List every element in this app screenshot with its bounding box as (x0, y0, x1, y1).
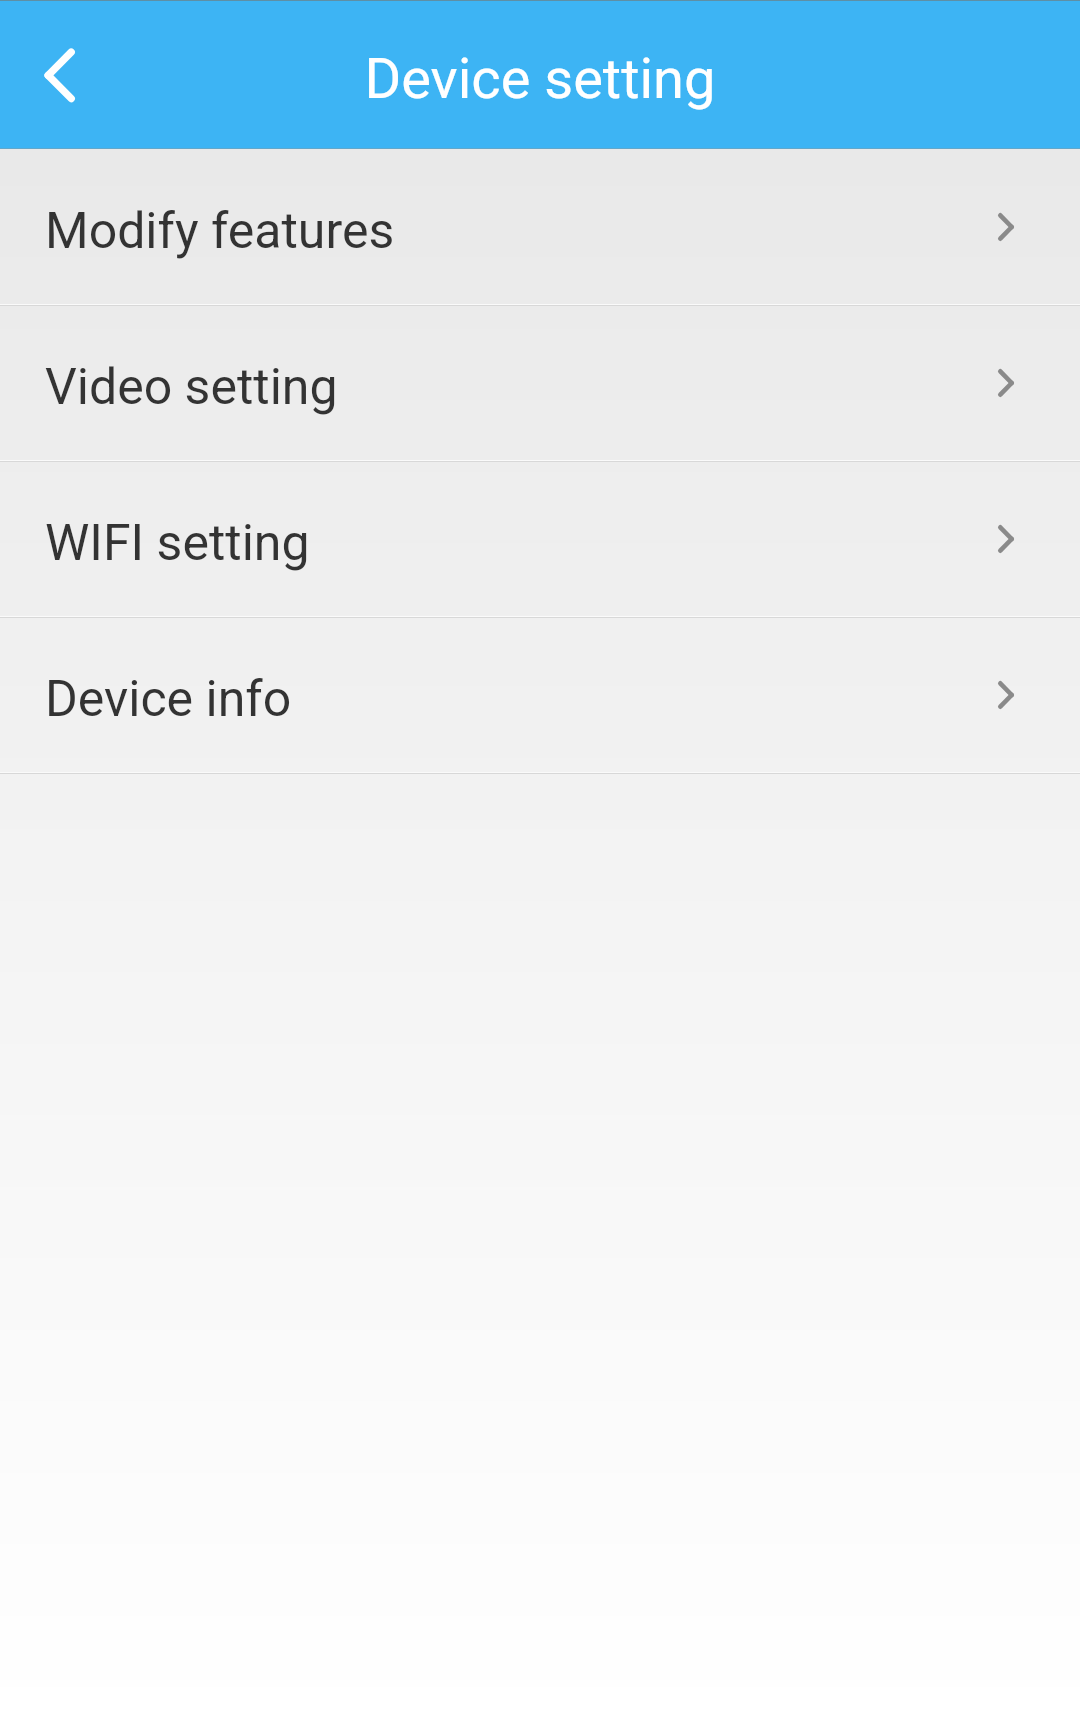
button[interactable]: Device info (0, 618, 1080, 772)
button[interactable]: Video setting (0, 306, 1080, 460)
staticText: Device info (45, 670, 292, 729)
staticText: Modify features (45, 202, 395, 261)
staticText: WIFI setting (45, 514, 310, 573)
button[interactable]: Modify features (0, 150, 1080, 304)
button[interactable]: WIFI setting (0, 462, 1080, 616)
staticText: Device setting (0, 46, 1080, 112)
staticText: Video setting (45, 358, 338, 417)
button[interactable]: Back (0, 0, 118, 148)
